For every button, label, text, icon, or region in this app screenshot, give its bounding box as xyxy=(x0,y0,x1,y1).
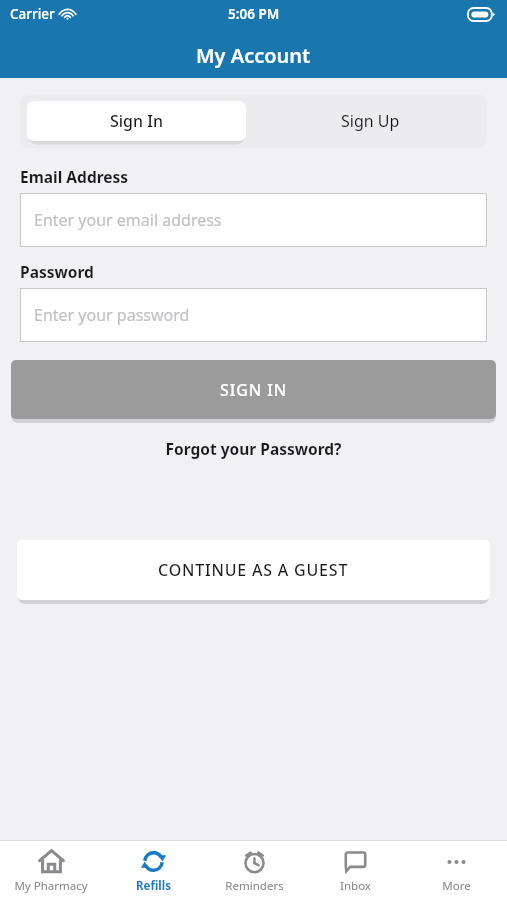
button[interactable]: My Pharmacy xyxy=(0,841,102,900)
button[interactable]: Refills xyxy=(102,841,204,900)
staticText: CONTINUE AS A GUEST xyxy=(158,559,349,581)
staticText: Enter your email address xyxy=(34,209,222,231)
staticText: Reminders xyxy=(225,878,284,894)
staticText: My Pharmacy xyxy=(14,878,88,894)
button[interactable]: Sign Up xyxy=(253,94,487,148)
staticText: SIGN IN xyxy=(220,379,288,401)
staticText: Sign In xyxy=(110,110,163,132)
button[interactable]: Reminders xyxy=(204,841,305,900)
button[interactable]: More xyxy=(406,841,507,900)
staticText: My Account xyxy=(196,42,311,69)
staticText: Password xyxy=(20,261,94,282)
button[interactable]: Enter your email address xyxy=(20,193,487,247)
staticText: Email Address xyxy=(20,166,129,187)
staticText: Enter your password xyxy=(34,304,190,326)
button[interactable]: SIGN IN xyxy=(11,360,496,419)
staticText: More xyxy=(442,878,471,894)
button[interactable]: Forgot your Password? xyxy=(0,436,507,461)
button[interactable]: Sign In xyxy=(27,101,246,141)
staticText: Inbox xyxy=(340,878,371,894)
button[interactable]: Enter your password xyxy=(20,288,487,342)
staticText: 5:06 PM xyxy=(228,5,280,23)
staticText: Carrier xyxy=(10,5,55,23)
button[interactable]: CONTINUE AS A GUEST xyxy=(17,540,490,600)
button[interactable]: Inbox xyxy=(305,841,406,900)
staticText: Sign Up xyxy=(341,110,400,132)
staticText: Refills xyxy=(136,878,171,894)
